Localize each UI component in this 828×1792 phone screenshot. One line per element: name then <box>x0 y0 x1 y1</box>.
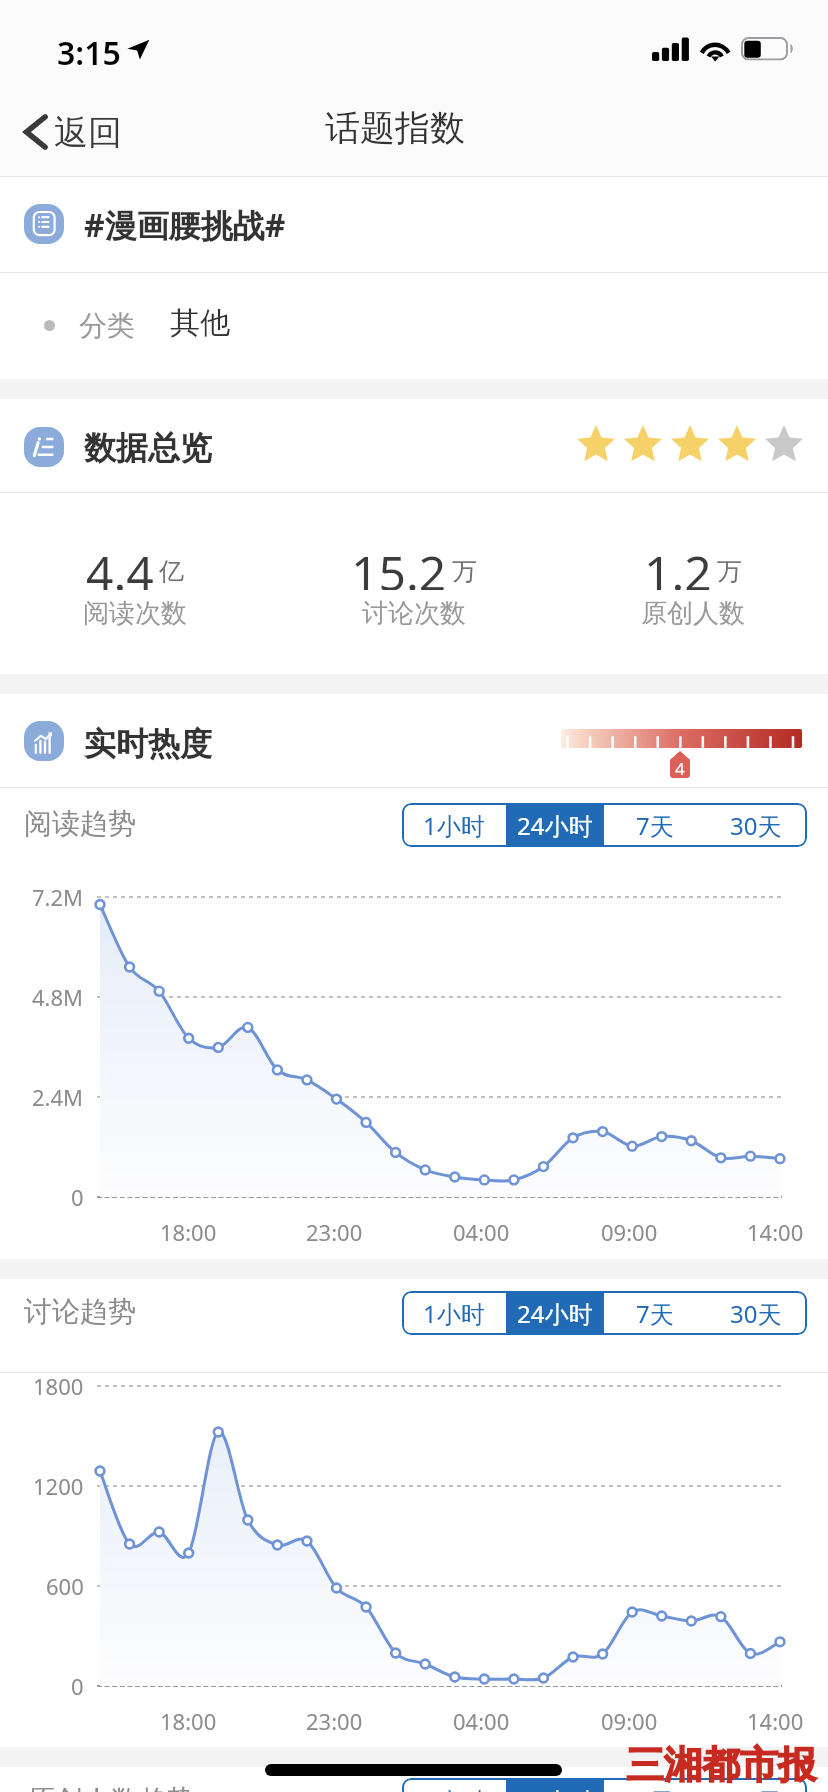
staticText: 09:00 <box>601 1217 658 1247</box>
staticText: 7天 <box>636 1297 674 1330</box>
staticText: 阅读趋势 <box>24 806 136 841</box>
staticText: 其他 <box>170 304 230 342</box>
staticText: 14:00 <box>747 1217 804 1247</box>
staticText: 阅读次数 <box>83 597 187 630</box>
staticText: 24小时 <box>517 1297 593 1330</box>
staticText: 1小时 <box>423 1784 485 1792</box>
staticText: 23:00 <box>306 1706 363 1736</box>
staticText: 三湘都市报 <box>626 1741 816 1789</box>
staticText: 1.2 <box>644 540 712 590</box>
staticText: 4.4 <box>86 540 154 590</box>
staticText: 1800 <box>33 1371 84 1401</box>
staticText: 600 <box>46 1571 84 1601</box>
staticText: 原创人数趋势 <box>27 1783 195 1792</box>
button[interactable]: 7天 <box>604 1778 705 1792</box>
staticText: 30天 <box>730 809 782 842</box>
button[interactable]: 1小时 <box>402 803 506 847</box>
staticText: 亿 <box>159 556 184 587</box>
staticText: 万 <box>717 556 742 587</box>
staticText: 30天 <box>730 1297 782 1330</box>
staticText: 18:00 <box>160 1706 217 1736</box>
staticText: 原创人数 <box>641 597 745 630</box>
button[interactable]: 返回 <box>14 98 132 166</box>
staticText: 0 <box>71 1182 84 1212</box>
button[interactable]: 30天 <box>705 803 807 847</box>
staticText: 4.8M <box>32 982 84 1012</box>
staticText: #漫画腰挑战# <box>84 203 286 247</box>
button[interactable]: 24小时 <box>506 803 604 847</box>
button[interactable]: 30天 <box>705 1778 807 1792</box>
button[interactable]: 1小时 <box>402 1291 506 1335</box>
button[interactable]: 24小时 <box>506 1778 604 1792</box>
staticText: 讨论趋势 <box>24 1294 136 1329</box>
staticText: 实时热度 <box>84 724 212 764</box>
staticText: 30天 <box>730 1784 782 1792</box>
staticText: 24小时 <box>517 809 593 842</box>
staticText: 04:00 <box>453 1706 510 1736</box>
staticText: 万 <box>452 556 477 587</box>
staticText: 1200 <box>33 1471 84 1501</box>
staticText: 4 <box>675 757 685 778</box>
staticText: 18:00 <box>160 1217 217 1247</box>
staticText: 23:00 <box>306 1217 363 1247</box>
staticText: 04:00 <box>453 1217 510 1247</box>
staticText: 讨论次数 <box>362 597 466 630</box>
button[interactable]: 1小时 <box>402 1778 506 1792</box>
staticText: 话题指数 <box>325 106 465 150</box>
staticText: 0 <box>71 1671 84 1701</box>
button[interactable]: 24小时 <box>506 1291 604 1335</box>
staticText: 2.4M <box>32 1082 84 1112</box>
staticText: 24小时 <box>517 1784 593 1792</box>
staticText: 7天 <box>636 1784 674 1792</box>
staticText: 09:00 <box>601 1706 658 1736</box>
staticText: 15.2 <box>351 540 447 590</box>
button[interactable]: 7天 <box>604 1291 705 1335</box>
staticText: 7.2M <box>32 882 84 912</box>
staticText: 1小时 <box>423 1297 485 1330</box>
staticText: 14:00 <box>747 1706 804 1736</box>
staticText: 3:15 <box>57 31 121 75</box>
staticText: 7天 <box>636 809 674 842</box>
staticText: 分类 <box>79 308 135 343</box>
staticText: 数据总览 <box>84 428 212 468</box>
button[interactable]: 30天 <box>705 1291 807 1335</box>
staticText: 返回 <box>54 111 122 154</box>
staticText: 1小时 <box>423 809 485 842</box>
button[interactable]: 7天 <box>604 803 705 847</box>
